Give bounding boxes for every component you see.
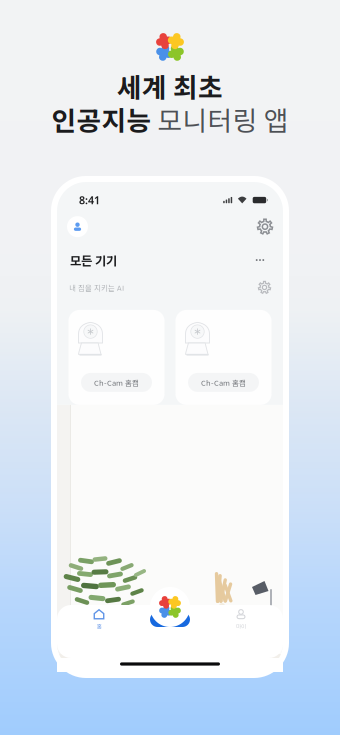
staticText: 8:41 <box>79 193 100 207</box>
staticText: 홈 <box>96 622 101 630</box>
staticText: Ch-Cam 홈캠 <box>201 377 246 388</box>
button[interactable]: Device settings <box>258 281 271 294</box>
staticText: 인공지능 <box>51 100 151 138</box>
button[interactable]: Settings <box>257 219 273 235</box>
staticText: 모니터링 앱 <box>151 100 288 138</box>
staticText: 세계 최초 <box>117 67 223 105</box>
button[interactable]: Ch-Cam 홈캠 <box>68 310 164 405</box>
button[interactable]: More options <box>250 254 270 266</box>
button[interactable]: AiCare <box>139 604 201 634</box>
button[interactable]: 마이 <box>210 604 272 634</box>
staticText: AiCare <box>157 614 182 625</box>
staticText: 마이 <box>236 622 246 630</box>
staticText: 모든 기기 <box>70 251 117 269</box>
staticText: Ch-Cam 홈캠 <box>94 377 139 388</box>
button[interactable]: Ch-Cam 홈캠 <box>175 310 271 405</box>
button[interactable]: 홈 <box>68 604 130 634</box>
staticText: 내 집을 지키는 AI <box>69 282 124 293</box>
button[interactable]: Profile <box>67 216 88 237</box>
